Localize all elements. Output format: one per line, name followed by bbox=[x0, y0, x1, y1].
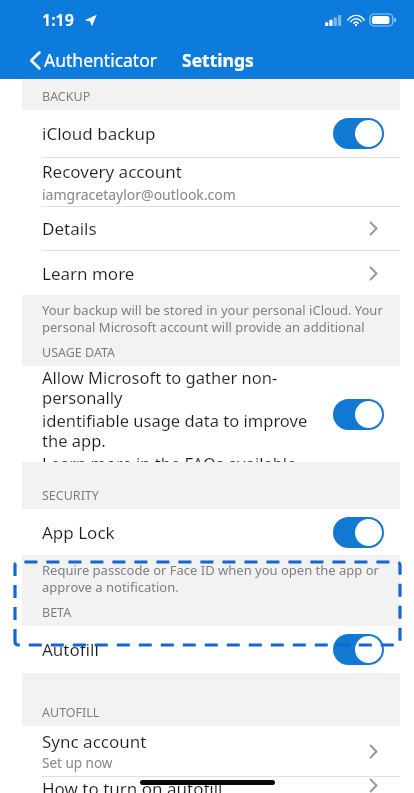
button[interactable]: Learn more bbox=[22, 251, 400, 295]
button[interactable]: How to turn on autofill bbox=[22, 777, 400, 793]
staticText: How to turn on autofill bbox=[42, 777, 369, 793]
staticText: Allow Microsoft to gather non-personally bbox=[42, 366, 325, 409]
staticText: AUTOFILL bbox=[42, 704, 100, 721]
button[interactable]: Toggle on bbox=[333, 118, 384, 149]
staticText: Require passcode or Face ID when you ope… bbox=[42, 561, 386, 595]
button[interactable]: Allow Microsoft to gather non-personally bbox=[22, 366, 400, 462]
button[interactable]: App Lock bbox=[22, 509, 400, 555]
button[interactable]: Autofill bbox=[22, 626, 400, 673]
staticText: Learn more bbox=[42, 262, 369, 285]
staticText: iamgracetaylor@outlook.com bbox=[42, 185, 236, 204]
button[interactable]: Toggle on bbox=[333, 634, 384, 665]
staticText: Set up now bbox=[42, 754, 113, 772]
staticText: App Lock bbox=[42, 521, 333, 544]
staticText: identifiable usage data to improve the a… bbox=[42, 409, 325, 452]
staticText: Learn more in the FAQs available under t… bbox=[42, 452, 325, 462]
staticText: Sync account bbox=[42, 730, 147, 753]
staticText: Details bbox=[42, 217, 369, 240]
staticText: 1:19 bbox=[42, 9, 74, 31]
button[interactable]: Authenticator bbox=[0, 44, 167, 76]
staticText: Autofill bbox=[42, 638, 333, 661]
button[interactable]: Toggle on bbox=[333, 399, 384, 430]
staticText: Your backup will be stored in your perso… bbox=[42, 301, 386, 335]
staticText: USAGE DATA bbox=[42, 344, 116, 361]
staticText: Authenticator bbox=[44, 48, 157, 72]
button[interactable]: Details bbox=[22, 207, 400, 250]
staticText: BETA bbox=[42, 604, 72, 621]
button[interactable]: Sync account bbox=[22, 726, 400, 776]
button[interactable]: Recovery account bbox=[22, 158, 400, 206]
staticText: iCloud backup bbox=[42, 122, 333, 145]
staticText: BACKUP bbox=[42, 88, 91, 105]
staticText: SECURITY bbox=[42, 487, 99, 504]
button[interactable]: Toggle on bbox=[333, 517, 384, 548]
button[interactable]: iCloud backup bbox=[22, 110, 400, 157]
staticText: Settings bbox=[182, 48, 254, 72]
staticText: Recovery account bbox=[42, 160, 182, 183]
